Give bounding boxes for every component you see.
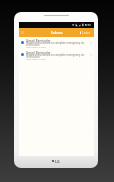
button[interactable]: Gmail Reminder: [19, 49, 94, 61]
button[interactable]: Later: [77, 28, 94, 37]
staticText: LG: [55, 159, 60, 163]
staticText: Gmail Reminder: [26, 51, 51, 55]
staticText: Review these details to complete emergen…: [26, 41, 85, 45]
staticText: Later: [82, 30, 91, 35]
button[interactable]: Open conversation: [89, 53, 93, 57]
button[interactable]: Open navigation menu: [20, 28, 25, 37]
staticText: verification: [26, 43, 40, 47]
staticText: verification: [26, 55, 40, 59]
button[interactable]: Gmail Reminder: [19, 37, 94, 49]
staticText: Gmail Reminder: [26, 39, 51, 43]
staticText: Inbox: [51, 30, 63, 36]
staticText: Hello team 2 days: [26, 58, 46, 61]
staticText: Hello team 2 days: [26, 46, 46, 49]
button[interactable]: Open conversation: [89, 41, 93, 45]
staticText: Review these details to complete emergen…: [26, 53, 85, 57]
